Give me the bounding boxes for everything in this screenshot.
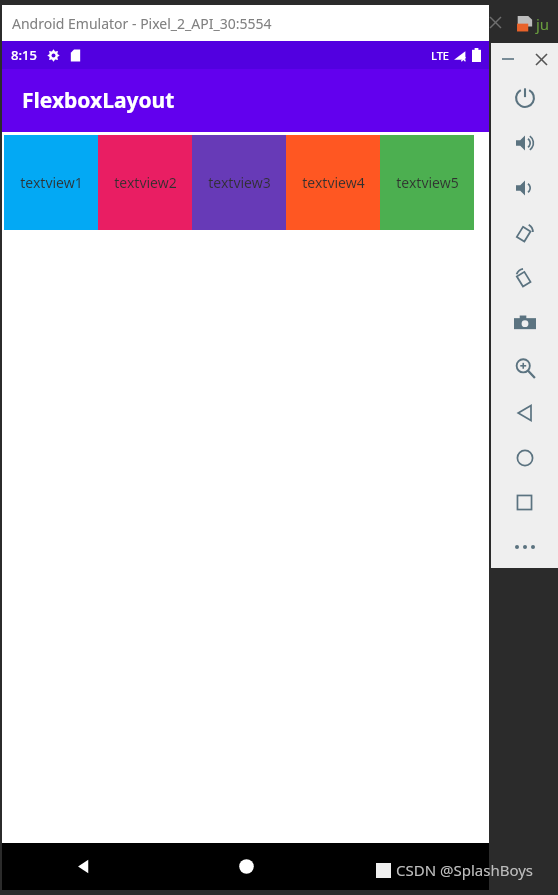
staticText: textview3 bbox=[208, 173, 271, 192]
button[interactable]: Minimize bbox=[491, 43, 524, 75]
button[interactable]: Back bbox=[2, 843, 165, 890]
staticText: 8:15 bbox=[11, 46, 37, 64]
button[interactable]: Rotate right bbox=[491, 255, 558, 300]
button[interactable]: Close bbox=[524, 43, 558, 75]
button[interactable]: Power bbox=[491, 75, 558, 120]
button[interactable]: textview1 bbox=[4, 135, 98, 230]
button[interactable]: Volume up bbox=[491, 120, 558, 165]
button[interactable]: Overview bbox=[491, 480, 558, 525]
staticText: LTE bbox=[431, 48, 449, 63]
staticText: Android Emulator - Pixel_2_API_30:5554 bbox=[12, 14, 272, 33]
button[interactable]: Home bbox=[491, 435, 558, 480]
staticText: textview2 bbox=[114, 173, 177, 192]
button[interactable]: textview5 bbox=[380, 135, 474, 230]
button[interactable]: Volume down bbox=[491, 165, 558, 210]
staticText: CSDN @SplashBoys bbox=[396, 860, 534, 880]
button[interactable]: textview3 bbox=[192, 135, 286, 230]
button[interactable]: Back bbox=[491, 390, 558, 435]
staticText: textview5 bbox=[396, 173, 459, 192]
staticText: textview1 bbox=[20, 173, 83, 192]
staticText: ju bbox=[536, 14, 550, 34]
button[interactable]: Rotate left bbox=[491, 210, 558, 255]
button[interactable]: textview2 bbox=[98, 135, 192, 230]
button[interactable]: Android Emulator - Pixel_2_API_30:5554 bbox=[2, 5, 489, 41]
button[interactable]: More bbox=[491, 525, 558, 568]
button[interactable]: Recents bbox=[327, 843, 489, 890]
button[interactable]: Zoom bbox=[491, 345, 558, 390]
staticText: textview4 bbox=[302, 173, 365, 192]
button[interactable]: Screenshot bbox=[491, 300, 558, 345]
button[interactable]: Close window bbox=[487, 14, 503, 30]
button[interactable]: Home bbox=[165, 843, 327, 890]
button[interactable]: textview4 bbox=[286, 135, 380, 230]
staticText: FlexboxLayout bbox=[22, 86, 175, 115]
button[interactable]: FlexboxLayout bbox=[2, 69, 489, 132]
